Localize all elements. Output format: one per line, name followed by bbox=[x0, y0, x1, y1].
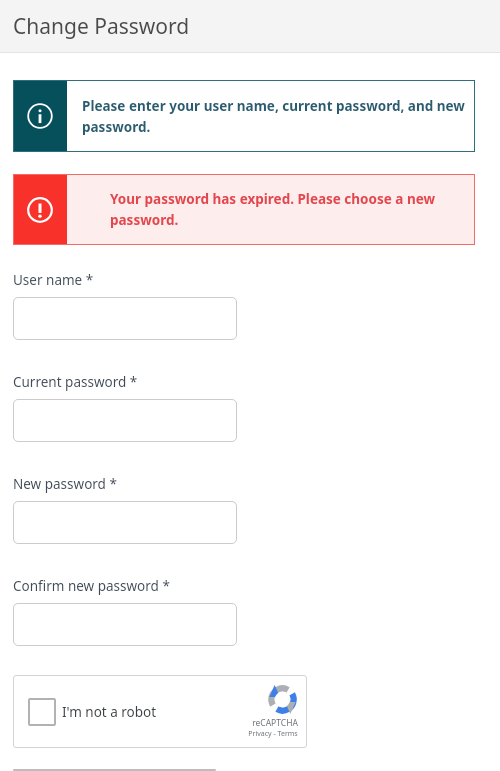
staticText: User name * bbox=[13, 271, 94, 289]
button[interactable] bbox=[13, 399, 237, 442]
other: reCAPTCHA logo bbox=[267, 684, 298, 715]
staticText: reCAPTCHA bbox=[252, 717, 298, 729]
button[interactable] bbox=[13, 603, 237, 646]
staticText: Privacy - Terms bbox=[248, 729, 298, 739]
staticText: New password * bbox=[13, 475, 117, 493]
button[interactable] bbox=[13, 501, 237, 544]
button[interactable]: I'm not a robot bbox=[13, 675, 307, 748]
staticText: I'm not a robot bbox=[62, 703, 157, 721]
staticText: Your password has expired. Please choose… bbox=[110, 190, 436, 229]
other: Error bbox=[27, 197, 53, 223]
other: Information bbox=[27, 103, 53, 129]
staticText: Current password * bbox=[13, 373, 138, 391]
staticText: Please enter your user name, current pas… bbox=[82, 97, 465, 136]
staticText: Change Password bbox=[13, 12, 190, 41]
staticText: Confirm new password * bbox=[13, 577, 170, 595]
button[interactable] bbox=[13, 297, 237, 340]
